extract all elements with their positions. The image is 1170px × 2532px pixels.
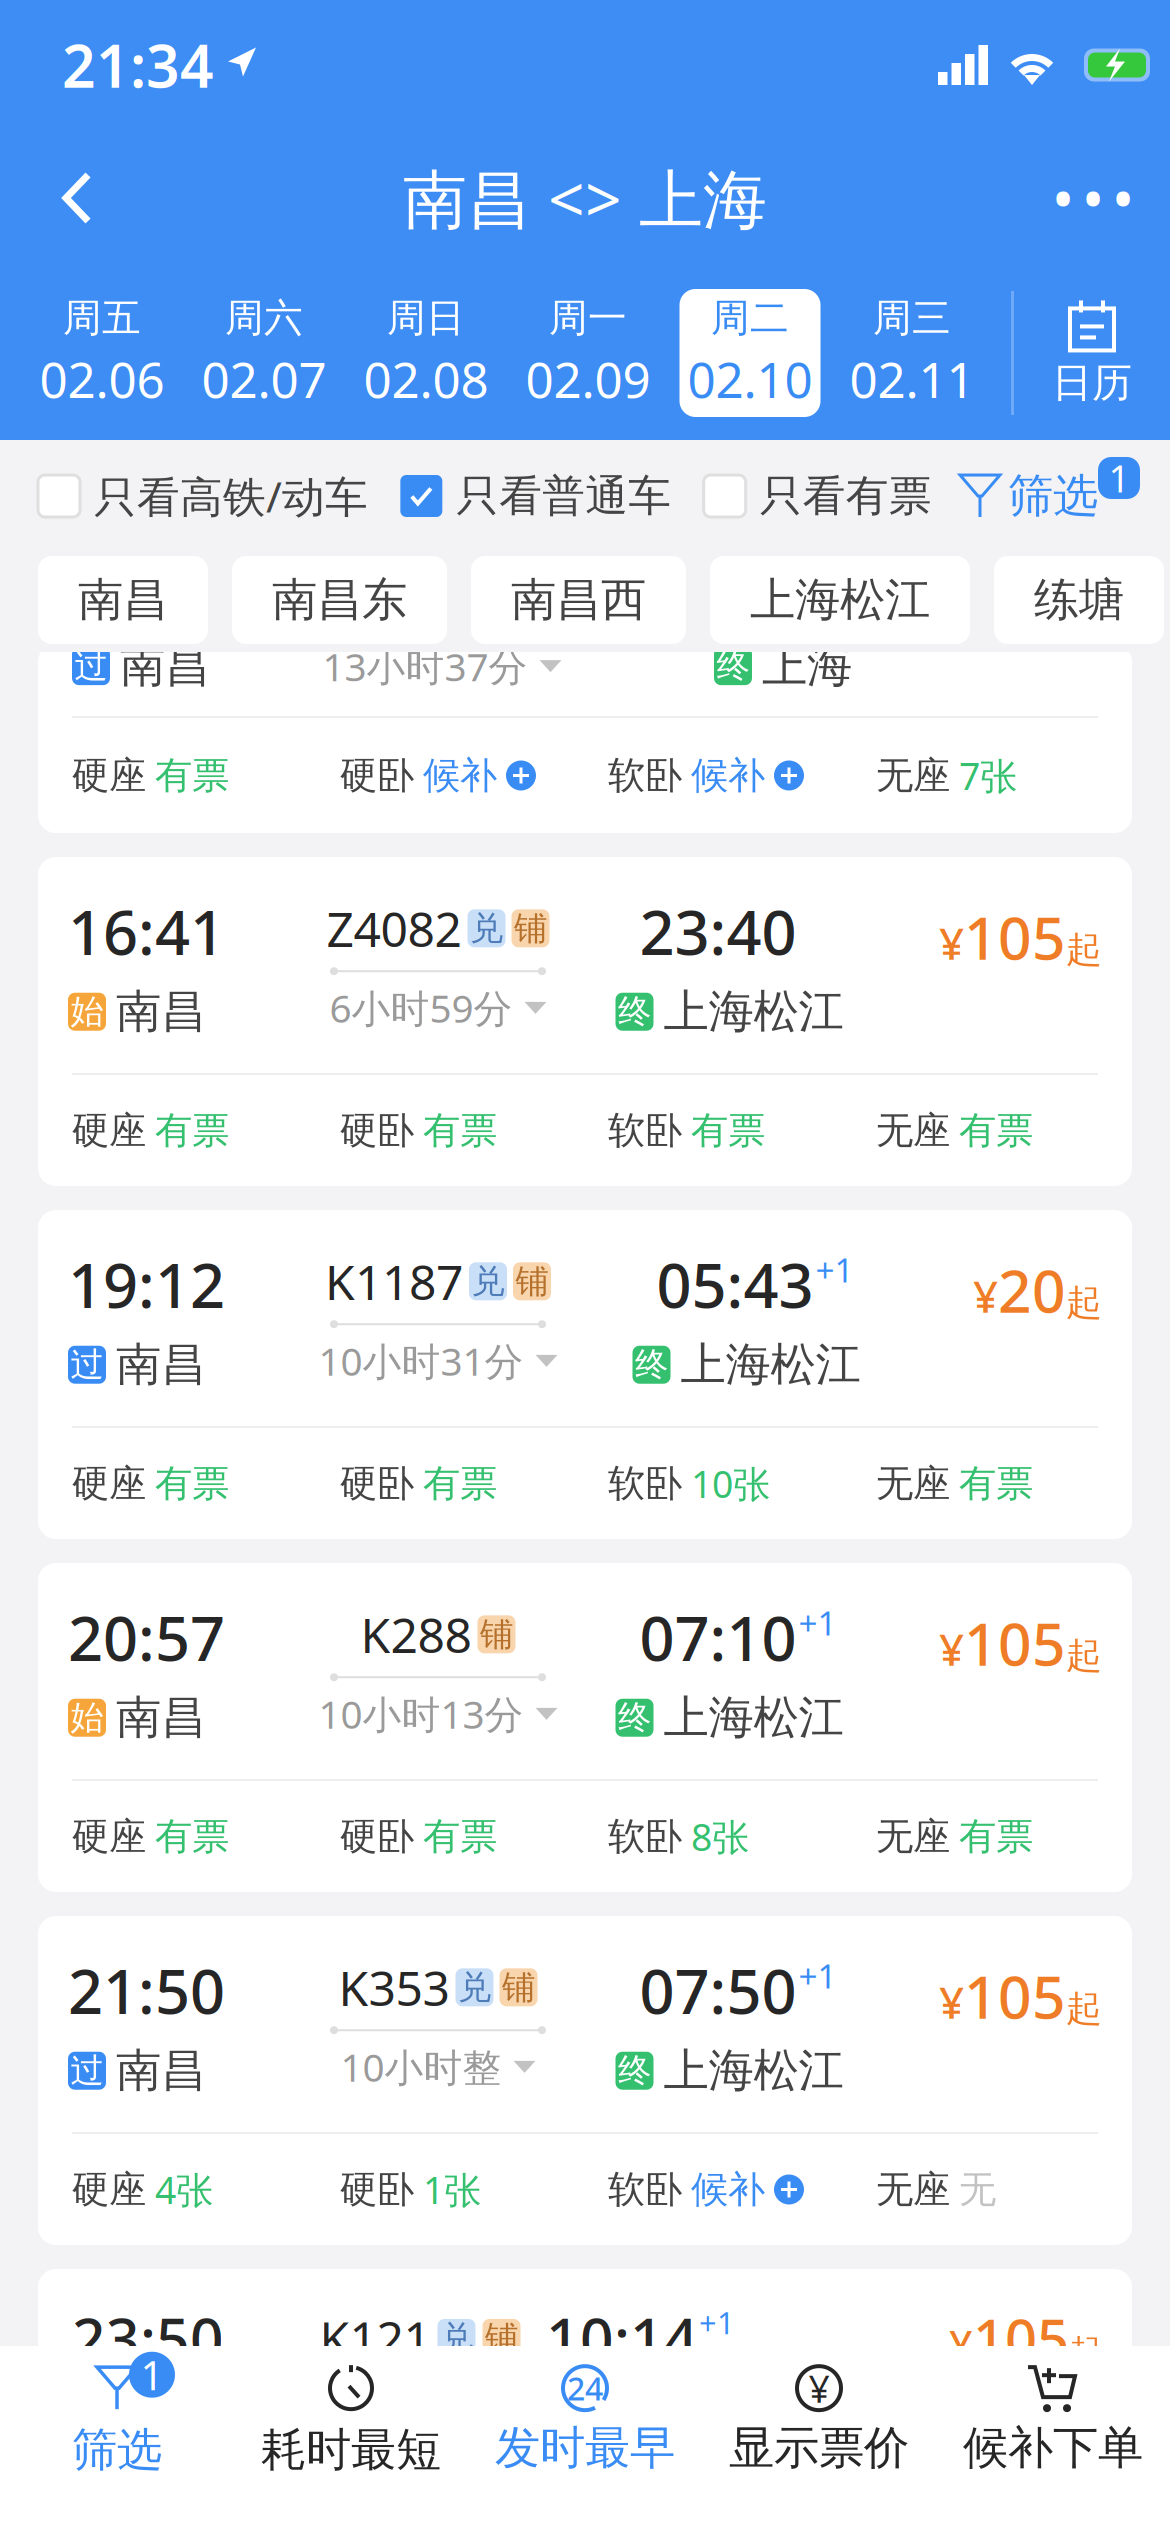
- button[interactable]: ¥: [702, 2356, 936, 2482]
- button[interactable]: 周三: [831, 286, 993, 420]
- button[interactable]: 19:12: [38, 1210, 1132, 1539]
- staticText: 7张: [959, 751, 1017, 800]
- staticText: 10:14: [546, 2299, 698, 2377]
- button[interactable]: 周一: [507, 286, 669, 420]
- button[interactable]: 只看普通车: [400, 470, 671, 522]
- button[interactable]: 南昌: [38, 556, 208, 644]
- staticText: 23:50: [72, 2299, 224, 2377]
- button[interactable]: 16:41: [38, 857, 1132, 1186]
- staticText: 周六: [225, 294, 303, 342]
- staticText: 02.10: [687, 346, 812, 411]
- button[interactable]: 更多: [1038, 143, 1148, 253]
- staticText: 硬卧: [340, 1814, 414, 1859]
- staticText: 南昌: [116, 2043, 206, 2099]
- staticText: 始: [70, 991, 103, 1032]
- staticText: 软卧: [608, 1461, 682, 1506]
- button[interactable]: 周日: [345, 286, 507, 420]
- button[interactable]: 筛选: [964, 457, 1140, 535]
- staticText: 硬卧: [340, 1461, 414, 1506]
- staticText: K1187: [325, 1249, 463, 1313]
- button[interactable]: 24: [468, 2356, 702, 2482]
- staticText: 兑: [471, 1261, 504, 1302]
- staticText: 无座: [876, 1461, 950, 1506]
- staticText: 软卧: [608, 753, 682, 798]
- staticText: 上海松江: [663, 2043, 843, 2099]
- button[interactable]: 练塘: [994, 556, 1164, 644]
- staticText: 02.09: [525, 346, 650, 411]
- staticText: 8张: [691, 1812, 749, 1861]
- staticText: 上海松江: [680, 1337, 860, 1393]
- staticText: 无座: [876, 753, 950, 798]
- staticText: 铺: [502, 1967, 535, 2008]
- staticText: 16:41: [68, 890, 225, 972]
- staticText: 上海: [762, 638, 852, 694]
- staticText: 有票: [155, 1108, 229, 1153]
- staticText: 硬座: [72, 1814, 146, 1859]
- staticText: 筛选: [1008, 468, 1098, 524]
- button[interactable]: 南昌西: [471, 556, 686, 644]
- staticText: 105: [964, 1957, 1066, 2035]
- staticText: 南昌: [116, 1337, 206, 1393]
- staticText: 周二: [711, 294, 789, 342]
- button[interactable]: 周二: [669, 286, 831, 420]
- staticText: 23:40: [639, 890, 796, 972]
- staticText: 起: [1066, 1987, 1102, 2031]
- staticText: 02.11: [849, 346, 974, 411]
- staticText: 软卧: [608, 2167, 682, 2212]
- staticText: 候补下单: [963, 2420, 1143, 2476]
- button[interactable]: 返回: [22, 143, 132, 253]
- button[interactable]: 只看有票: [704, 470, 932, 522]
- button[interactable]: 南昌东: [232, 556, 447, 644]
- staticText: 筛选: [72, 2422, 162, 2478]
- button[interactable]: 日历: [1014, 273, 1170, 433]
- staticText: 21:50: [68, 1949, 225, 2031]
- button[interactable]: 耗时最短: [234, 2356, 468, 2482]
- staticText: 10张: [691, 1459, 770, 1508]
- button[interactable]: 上海松江: [710, 556, 970, 644]
- staticText: 起: [1066, 1281, 1102, 1325]
- staticText: 南昌西: [511, 572, 646, 628]
- staticText: 铺: [514, 908, 547, 949]
- staticText: 终: [618, 2050, 651, 2091]
- staticText: 硬卧: [340, 753, 414, 798]
- staticText: 02.07: [201, 346, 326, 411]
- staticText: 24: [567, 2367, 603, 2409]
- staticText: 南昌: [120, 638, 210, 694]
- staticText: ¥: [949, 2317, 973, 2372]
- button[interactable]: 20:57: [38, 1563, 1132, 1892]
- staticText: 上海松江: [750, 572, 930, 628]
- button[interactable]: 周五: [21, 286, 183, 420]
- staticText: 105: [964, 898, 1066, 976]
- button[interactable]: 1: [0, 2356, 234, 2482]
- staticText: K121: [319, 2306, 430, 2370]
- staticText: 过: [70, 1344, 103, 1385]
- staticText: 耗时最短: [261, 2422, 441, 2478]
- staticText: 4张: [155, 2165, 213, 2214]
- button[interactable]: 周六: [183, 286, 345, 420]
- staticText: 终: [618, 991, 651, 1032]
- staticText: 6小时59分: [329, 982, 512, 1033]
- staticText: 有票: [423, 1461, 497, 1506]
- button[interactable]: 候补下单: [936, 2356, 1170, 2482]
- staticText: 过: [70, 2050, 103, 2091]
- staticText: 南昌: [116, 984, 206, 1040]
- staticText: K353: [338, 1955, 449, 2019]
- staticText: 只看普通车: [456, 470, 671, 522]
- staticText: 南昌: [78, 572, 168, 628]
- staticText: 19:12: [68, 1243, 225, 1325]
- button[interactable]: 只看高铁/动车: [38, 468, 368, 524]
- staticText: ¥: [939, 1972, 964, 2031]
- staticText: 13小时37分: [322, 640, 527, 692]
- staticText: +1: [798, 1953, 836, 1998]
- staticText: 05:43: [656, 1243, 813, 1325]
- staticText: 硬卧: [340, 1108, 414, 1153]
- staticText: 上海松江: [663, 984, 843, 1040]
- staticText: 10小时13分: [318, 1688, 523, 1739]
- staticText: 南昌东: [272, 572, 407, 628]
- staticText: 始: [70, 1697, 103, 1738]
- staticText: 10小时整: [340, 2041, 501, 2092]
- button[interactable]: 21:50: [38, 1916, 1132, 2245]
- staticText: 只看高铁/动车: [94, 468, 368, 524]
- staticText: 07:10: [639, 1596, 796, 1678]
- staticText: 练塘: [1034, 572, 1124, 628]
